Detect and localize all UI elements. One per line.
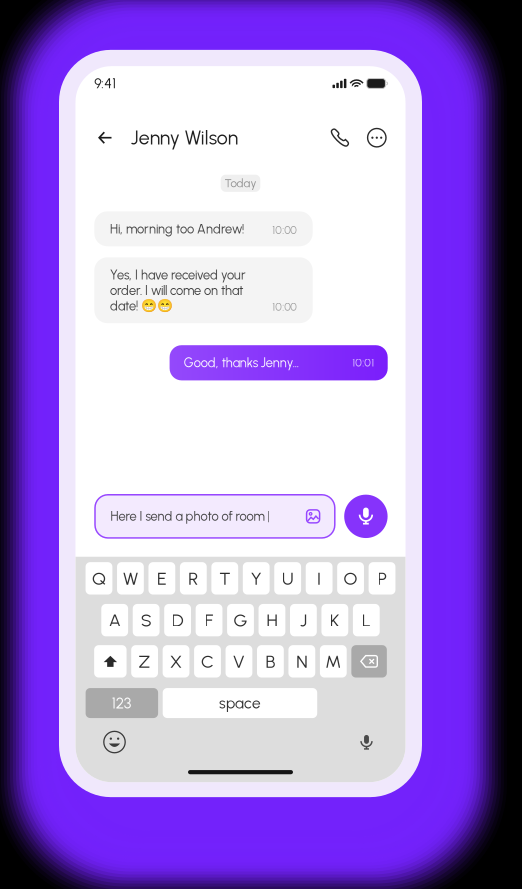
button[interactable]: L xyxy=(353,604,380,636)
button[interactable]: H xyxy=(258,604,285,636)
button[interactable]: Record voice message xyxy=(344,495,388,538)
staticText: Hi, morning too Andrew! xyxy=(110,221,244,237)
staticText: U xyxy=(282,568,294,589)
button[interactable]: Dictation xyxy=(351,729,381,755)
button[interactable]: M xyxy=(320,645,347,677)
button[interactable]: Voice call xyxy=(330,125,349,151)
button[interactable]: Delete xyxy=(351,645,387,677)
staticText: F xyxy=(204,609,213,631)
button[interactable]: Q xyxy=(86,562,112,594)
staticText: I xyxy=(317,568,321,589)
staticText: V xyxy=(233,651,245,672)
staticText: Here I send a photo of room | xyxy=(110,509,270,524)
staticText: Jenny Wilson xyxy=(131,126,238,149)
button[interactable]: U xyxy=(274,562,301,594)
staticText: Q xyxy=(92,568,106,589)
button[interactable]: Emoji keyboard xyxy=(99,729,129,755)
button[interactable]: K xyxy=(321,604,348,636)
staticText: 10:00 xyxy=(272,300,297,314)
staticText: C xyxy=(201,651,214,672)
staticText: Today xyxy=(224,176,256,190)
button[interactable]: D xyxy=(164,604,191,636)
button[interactable]: X xyxy=(163,645,189,677)
staticText: O xyxy=(344,568,358,589)
staticText: order. I will come on that xyxy=(110,283,243,298)
staticText: T xyxy=(219,568,230,589)
staticText: G xyxy=(233,609,247,631)
staticText: 10:00 xyxy=(272,224,297,237)
button[interactable]: V xyxy=(226,645,252,677)
button[interactable]: Back xyxy=(98,125,112,151)
staticText: 123 xyxy=(112,694,132,712)
button[interactable]: 123 xyxy=(86,688,158,718)
button[interactable]: Shift xyxy=(94,645,126,677)
staticText: Good, thanks Jenny... xyxy=(184,355,299,370)
button[interactable]: G xyxy=(227,604,254,636)
staticText: X xyxy=(170,651,182,672)
button[interactable]: Z xyxy=(131,645,158,677)
button[interactable]: T xyxy=(211,562,238,594)
staticText: H xyxy=(266,609,277,631)
staticText: K xyxy=(330,609,340,631)
button[interactable]: R xyxy=(180,562,207,594)
staticText: E xyxy=(157,568,167,589)
staticText: L xyxy=(362,609,371,631)
button[interactable]: E xyxy=(148,562,175,594)
button[interactable]: B xyxy=(257,645,284,677)
button[interactable]: W xyxy=(117,562,144,594)
staticText: N xyxy=(296,651,307,672)
button[interactable]: Y xyxy=(243,562,270,594)
button[interactable]: J xyxy=(290,604,317,636)
staticText: P xyxy=(377,568,386,589)
staticText: W xyxy=(123,568,138,589)
button[interactable]: Here I send a photo of room | xyxy=(95,495,335,538)
staticText: Y xyxy=(251,568,262,589)
button[interactable]: space xyxy=(163,688,317,718)
staticText: B xyxy=(265,651,275,672)
button[interactable]: A xyxy=(101,604,128,636)
staticText: date! 😁😁 xyxy=(110,298,173,314)
staticText: 10:01 xyxy=(352,356,374,369)
button[interactable]: C xyxy=(194,645,221,677)
staticText: S xyxy=(141,609,152,631)
button[interactable]: S xyxy=(133,604,160,636)
staticText: 9:41 xyxy=(94,75,116,92)
button[interactable]: I xyxy=(306,562,332,594)
staticText: M xyxy=(325,651,341,672)
button[interactable]: O xyxy=(337,562,364,594)
staticText: Z xyxy=(139,651,151,672)
button[interactable]: P xyxy=(369,562,395,594)
button[interactable]: F xyxy=(196,604,222,636)
staticText: space xyxy=(219,694,261,712)
staticText: Yes, I have received your xyxy=(110,267,246,283)
button[interactable]: More options xyxy=(368,125,386,151)
staticText: R xyxy=(188,568,198,589)
staticText: D xyxy=(172,609,184,631)
staticText: J xyxy=(300,609,307,631)
staticText: A xyxy=(109,609,121,631)
button[interactable]: N xyxy=(288,645,315,677)
